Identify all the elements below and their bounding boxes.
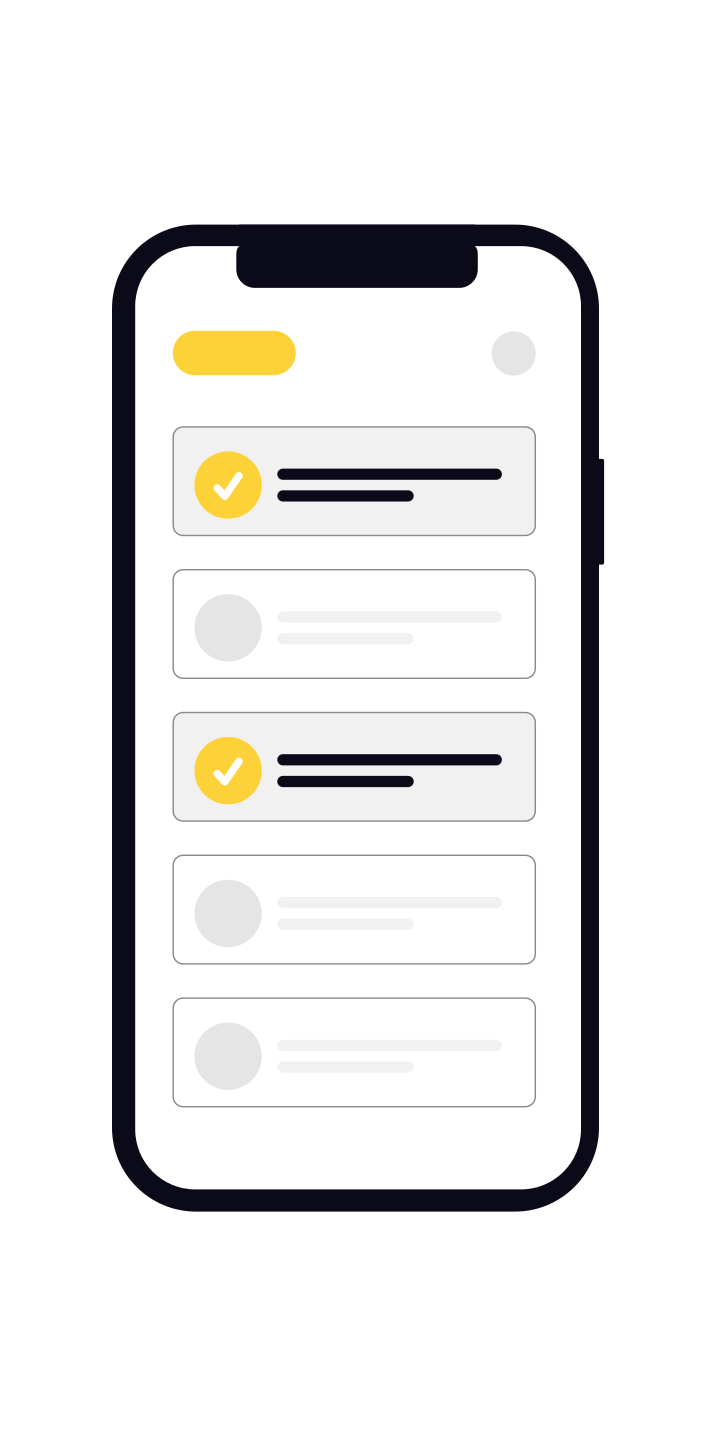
button[interactable]: Profile: [492, 331, 536, 376]
button[interactable]: [173, 855, 535, 964]
button[interactable]: [173, 712, 535, 821]
button[interactable]: Today: [173, 331, 296, 375]
button[interactable]: [173, 998, 535, 1107]
button[interactable]: [173, 427, 535, 535]
button[interactable]: [173, 570, 535, 678]
